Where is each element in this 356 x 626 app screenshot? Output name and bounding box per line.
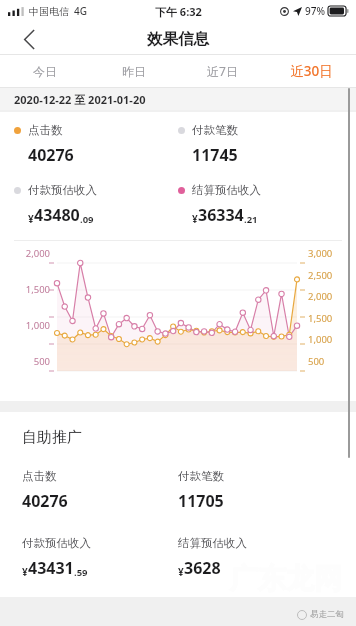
button[interactable]: 结算预估收入: [178, 536, 356, 579]
staticText: 500: [308, 355, 356, 368]
staticText: 2,500: [308, 269, 356, 282]
staticText: ¥: [192, 212, 198, 226]
staticText: 1,000: [0, 319, 50, 332]
staticText: 4G: [74, 4, 87, 18]
button[interactable]: 付款笔数: [178, 123, 356, 166]
staticText: ¥: [22, 565, 28, 579]
staticText: 36334: [198, 204, 244, 226]
button[interactable]: 结算预估收入: [178, 183, 356, 226]
staticText: .59: [74, 566, 88, 579]
staticText: 500: [0, 355, 50, 368]
staticText: 付款笔数: [178, 469, 224, 483]
button[interactable]: 点击数: [14, 123, 178, 166]
staticText: 点击数: [22, 469, 57, 483]
staticText: 中国电信: [29, 5, 69, 18]
staticText: 1,500: [308, 312, 356, 325]
button[interactable]: Back: [14, 24, 44, 54]
staticText: 1,500: [0, 283, 50, 296]
staticText: 43431: [28, 557, 74, 579]
staticText: 2,000: [308, 290, 356, 303]
staticText: 97%: [305, 4, 325, 18]
staticText: 自助推广: [22, 428, 82, 447]
staticText: ¥: [28, 212, 34, 226]
staticText: 1,000: [308, 333, 356, 346]
staticText: 2020-12-22 至 2021-01-20: [14, 92, 146, 107]
staticText: 结算预估收入: [178, 536, 247, 550]
button[interactable]: 近30日: [267, 55, 356, 87]
staticText: .21: [244, 213, 258, 226]
staticText: 效果信息: [147, 29, 209, 49]
staticText: 易走二匈: [310, 609, 344, 620]
staticText: 付款预估收入: [22, 536, 91, 550]
staticText: 近30日: [290, 62, 333, 80]
staticText: ¥: [178, 565, 184, 579]
staticText: 结算预估收入: [192, 183, 261, 197]
staticText: 43480: [34, 204, 80, 226]
staticText: 近7日: [207, 63, 238, 79]
staticText: 40276: [28, 144, 74, 166]
staticText: 3,000: [308, 247, 356, 260]
button[interactable]: 今日: [0, 55, 89, 87]
staticText: 点击数: [28, 123, 63, 137]
staticText: 昨日: [122, 64, 146, 79]
staticText: 付款预估收入: [28, 183, 97, 197]
button[interactable]: 昨日: [89, 55, 178, 87]
staticText: 今日: [33, 64, 57, 79]
staticText: 40276: [22, 490, 68, 512]
staticText: 下午 6:32: [155, 4, 202, 19]
button[interactable]: 付款笔数: [178, 469, 356, 512]
staticText: 3628: [184, 557, 221, 579]
button[interactable]: 付款预估收入: [22, 536, 178, 579]
staticText: 11705: [178, 490, 224, 512]
button[interactable]: 付款预估收入: [14, 183, 178, 226]
staticText: .09: [80, 213, 94, 226]
button[interactable]: 点击数: [22, 469, 178, 512]
staticText: 11745: [192, 144, 238, 166]
staticText: 付款笔数: [192, 123, 238, 137]
staticText: 2,000: [0, 247, 50, 260]
button[interactable]: 近7日: [178, 55, 267, 87]
